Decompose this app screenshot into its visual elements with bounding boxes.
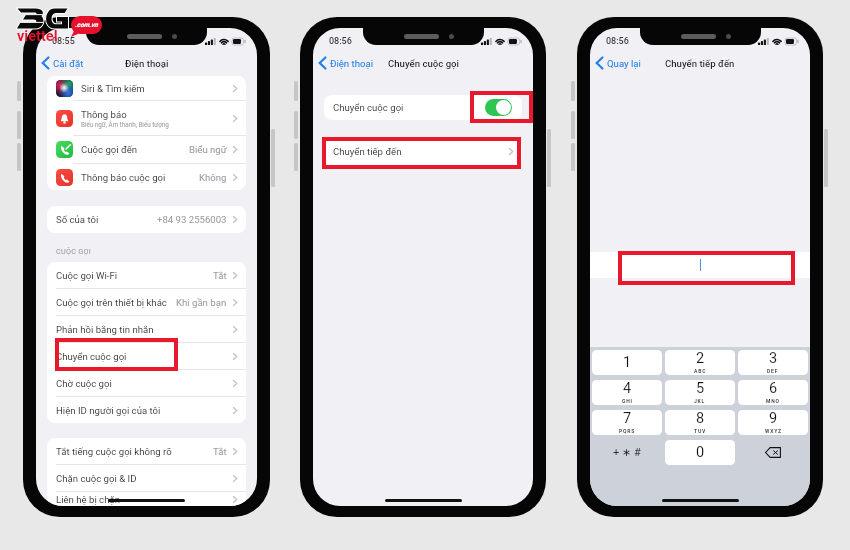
staticText: MNO [766, 398, 780, 404]
button[interactable]: Liên hệ bị chặn [47, 492, 246, 506]
staticText: 6 [769, 380, 778, 397]
staticText: Quay lại [607, 58, 641, 69]
button[interactable]: Hiện ID người gọi của tôi [47, 397, 246, 423]
button[interactable]: Cuộc gọi đến [47, 136, 246, 164]
button[interactable]: Phản hồi bằng tin nhắn [47, 316, 246, 343]
button[interactable]: Delete [738, 440, 808, 465]
staticText: Chuyển tiếp đến [333, 146, 509, 157]
staticText: viettel [17, 28, 58, 45]
button[interactable]: Chuyển cuộc gọi [47, 343, 246, 370]
staticText: Chờ cuộc gọi [56, 378, 112, 389]
staticText: JKL [694, 398, 706, 404]
staticText: 08:56 [329, 36, 352, 47]
button[interactable]: Quay lại [594, 54, 643, 72]
button[interactable]: 7 [592, 410, 662, 435]
button[interactable]: Chặn cuộc gọi & ID [47, 465, 246, 492]
staticText: Số của tôi [56, 214, 99, 225]
staticText: Cuộc gọi Wi-Fi [56, 270, 118, 281]
staticText: 7 [623, 410, 632, 427]
button[interactable]: 8 [665, 410, 735, 435]
staticText: PQRS [619, 428, 636, 434]
staticText: Biểu ngữ, Âm thanh, Biểu tượng [81, 121, 169, 128]
staticText: Chặn cuộc gọi & ID [56, 473, 137, 484]
button[interactable]: 0 [665, 440, 735, 465]
button[interactable]: Thông báo cuộc gọi [47, 164, 246, 190]
button[interactable]: Tắt tiếng cuộc gọi không rõ [47, 438, 246, 465]
staticText: Chuyển cuộc gọi [333, 102, 485, 113]
button[interactable]: 4 [592, 380, 662, 405]
staticText: +84 93 2556003 [157, 214, 227, 225]
staticText: Phản hồi bằng tin nhắn [56, 324, 154, 335]
staticText: Không [199, 172, 227, 183]
staticText: 1 [623, 354, 632, 371]
button[interactable]: Chờ cuộc gọi [47, 370, 246, 397]
staticText: .com.vn [75, 21, 98, 29]
staticText: GHI [622, 398, 633, 404]
button[interactable] [590, 252, 810, 278]
staticText: Điện thoại [125, 58, 169, 69]
staticText: DEF [767, 368, 779, 374]
button[interactable]: Chuyển cuộc gọi [324, 95, 522, 120]
staticText: Điện thoại [330, 58, 373, 69]
button[interactable]: Số của tôi [47, 206, 246, 233]
button[interactable]: Cuộc gọi Wi-Fi [47, 262, 246, 289]
staticText: 9 [769, 410, 778, 427]
staticText: Thông báo cuộc gọi [81, 172, 166, 183]
staticText: Cuộc gọi trên thiết bị khác [56, 297, 167, 308]
staticText: 8 [696, 410, 705, 427]
staticText: Hiện ID người gọi của tôi [56, 405, 161, 416]
staticText: 0 [696, 444, 705, 461]
button[interactable]: Thông báo [47, 101, 246, 136]
button[interactable]: Cài đặt [40, 54, 86, 72]
button[interactable]: Chuyển tiếp đến [324, 137, 522, 166]
staticText: 4 [623, 380, 632, 397]
staticText: CUỘC GỌI [56, 247, 92, 256]
staticText: Cuộc gọi đến [81, 144, 138, 155]
button[interactable]: 3 [738, 350, 808, 375]
button[interactable]: Siri & Tìm kiếm [47, 76, 246, 101]
staticText: 08:55 [52, 36, 75, 47]
staticText: 3 [769, 350, 778, 367]
staticText: Biểu ngữ [189, 144, 227, 155]
staticText: Thông báo [81, 109, 127, 120]
button[interactable]: 1 [592, 350, 662, 375]
staticText: Chuyển cuộc gọi [56, 351, 127, 362]
staticText: Liên hệ bị chặn [56, 494, 120, 505]
staticText: 5 [696, 380, 705, 397]
staticText: ABC [694, 368, 707, 374]
button[interactable]: 9 [738, 410, 808, 435]
staticText: Tắt [213, 446, 227, 457]
button[interactable]: 6 [738, 380, 808, 405]
button[interactable]: Cuộc gọi trên thiết bị khác [47, 289, 246, 316]
staticText: Tắt [213, 270, 227, 281]
button[interactable]: + ∗ # [592, 440, 662, 465]
staticText: Chuyển tiếp đến [665, 58, 735, 69]
button[interactable]: 2 [665, 350, 735, 375]
staticText: TUV [694, 428, 707, 434]
button[interactable]: 5 [665, 380, 735, 405]
staticText: Cài đặt [53, 58, 84, 69]
staticText: + ∗ # [613, 446, 641, 459]
staticText: 2 [696, 350, 705, 367]
staticText: Chuyển cuộc gọi [388, 58, 459, 69]
staticText: 08:56 [606, 36, 629, 47]
button[interactable]: Điện thoại [317, 54, 375, 72]
staticText: Khi gần bạn [176, 297, 227, 308]
staticText: Tắt tiếng cuộc gọi không rõ [56, 446, 172, 457]
staticText: WXYZ [765, 428, 782, 434]
staticText: Siri & Tìm kiếm [81, 83, 145, 94]
